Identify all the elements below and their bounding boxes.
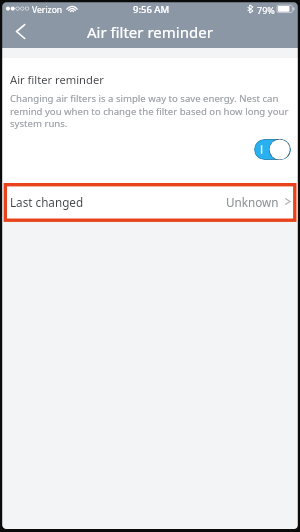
button[interactable]: Back: [4, 19, 38, 48]
staticText: Changing air filters is a simple way to …: [10, 92, 300, 130]
staticText: 9:56 AM: [133, 3, 170, 16]
staticText: Last changed: [10, 194, 84, 210]
staticText: Air filter reminder: [87, 22, 213, 42]
staticText: 79%: [257, 4, 275, 16]
staticText: Unknown: [226, 194, 279, 210]
staticText: Verizon: [32, 4, 63, 16]
staticText: Air filter reminder: [10, 72, 104, 87]
button[interactable]: Last changed: [0, 184, 300, 220]
button[interactable]: Air filter reminder toggle: [254, 139, 291, 160]
